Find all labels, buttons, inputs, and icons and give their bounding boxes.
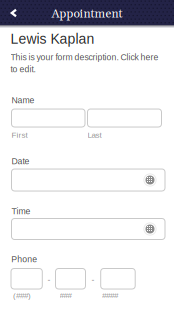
staticText: Time (11, 206, 30, 216)
staticText: This is your form description. Click her… (10, 52, 158, 62)
button[interactable]: Back (0, 0, 26, 25)
button[interactable] (87, 109, 161, 127)
button[interactable] (101, 268, 135, 289)
staticText: to edit. (10, 64, 35, 74)
button[interactable] (11, 109, 85, 127)
staticText: Appointment (51, 6, 122, 22)
button[interactable] (11, 218, 165, 239)
staticText: Date (11, 156, 29, 166)
button[interactable] (11, 268, 42, 289)
staticText: First (11, 130, 27, 139)
staticText: Last (87, 130, 101, 139)
staticText: (###) (13, 291, 31, 300)
button[interactable] (55, 268, 85, 289)
staticText: Name (11, 95, 34, 105)
button[interactable] (11, 169, 165, 191)
staticText: Lewis Kaplan (10, 31, 94, 47)
staticText: ### (59, 291, 71, 300)
staticText: #### (102, 291, 118, 300)
staticText: - (47, 275, 50, 285)
staticText: Phone (11, 254, 37, 264)
staticText: - (91, 275, 94, 285)
